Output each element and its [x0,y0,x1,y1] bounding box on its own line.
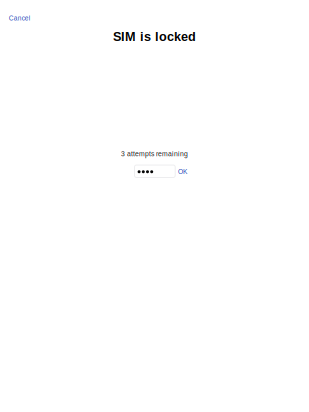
staticText: Cancel [9,14,30,22]
staticText: SIM is locked [113,29,196,44]
button[interactable]: Cancel [6,11,33,25]
button[interactable]: PIN [134,165,175,177]
button[interactable]: OK [175,165,189,178]
staticText: OK [178,168,187,175]
staticText: 3 attempts remaining [121,150,188,158]
